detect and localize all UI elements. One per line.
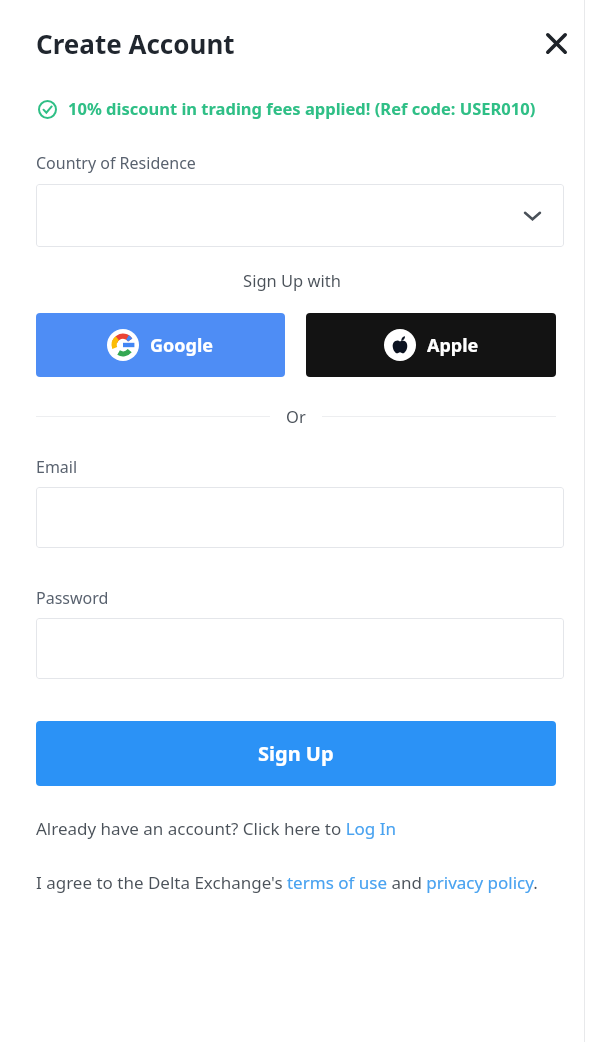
staticText: I agree to the Delta Exchange's terms of…	[36, 871, 538, 894]
button[interactable]: Password input	[36, 618, 564, 679]
button[interactable]: Sign Up	[36, 721, 556, 786]
button[interactable]: I agree to the Delta Exchange's terms of…	[36, 871, 538, 894]
staticText: Apple	[427, 333, 479, 358]
staticText: Google	[150, 333, 214, 358]
button[interactable]: Email input	[36, 487, 564, 548]
staticText: Country of Residence	[36, 152, 196, 174]
button[interactable]: Apple	[306, 313, 556, 377]
button[interactable]: Close	[534, 21, 578, 65]
staticText: Password	[36, 587, 109, 609]
staticText: Already have an account? Click here to L…	[36, 817, 396, 840]
staticText: Or	[286, 405, 306, 427]
button[interactable]: Google	[36, 313, 285, 377]
staticText: Sign Up	[258, 740, 334, 767]
staticText: 10% discount in trading fees applied! (R…	[68, 97, 536, 119]
staticText: Email	[36, 456, 78, 478]
button[interactable]: Already have an account? Click here to L…	[36, 817, 396, 840]
staticText: Sign Up with	[0, 269, 584, 291]
button[interactable]: Select country of residence	[36, 184, 564, 247]
staticText: Create Account	[36, 26, 235, 61]
